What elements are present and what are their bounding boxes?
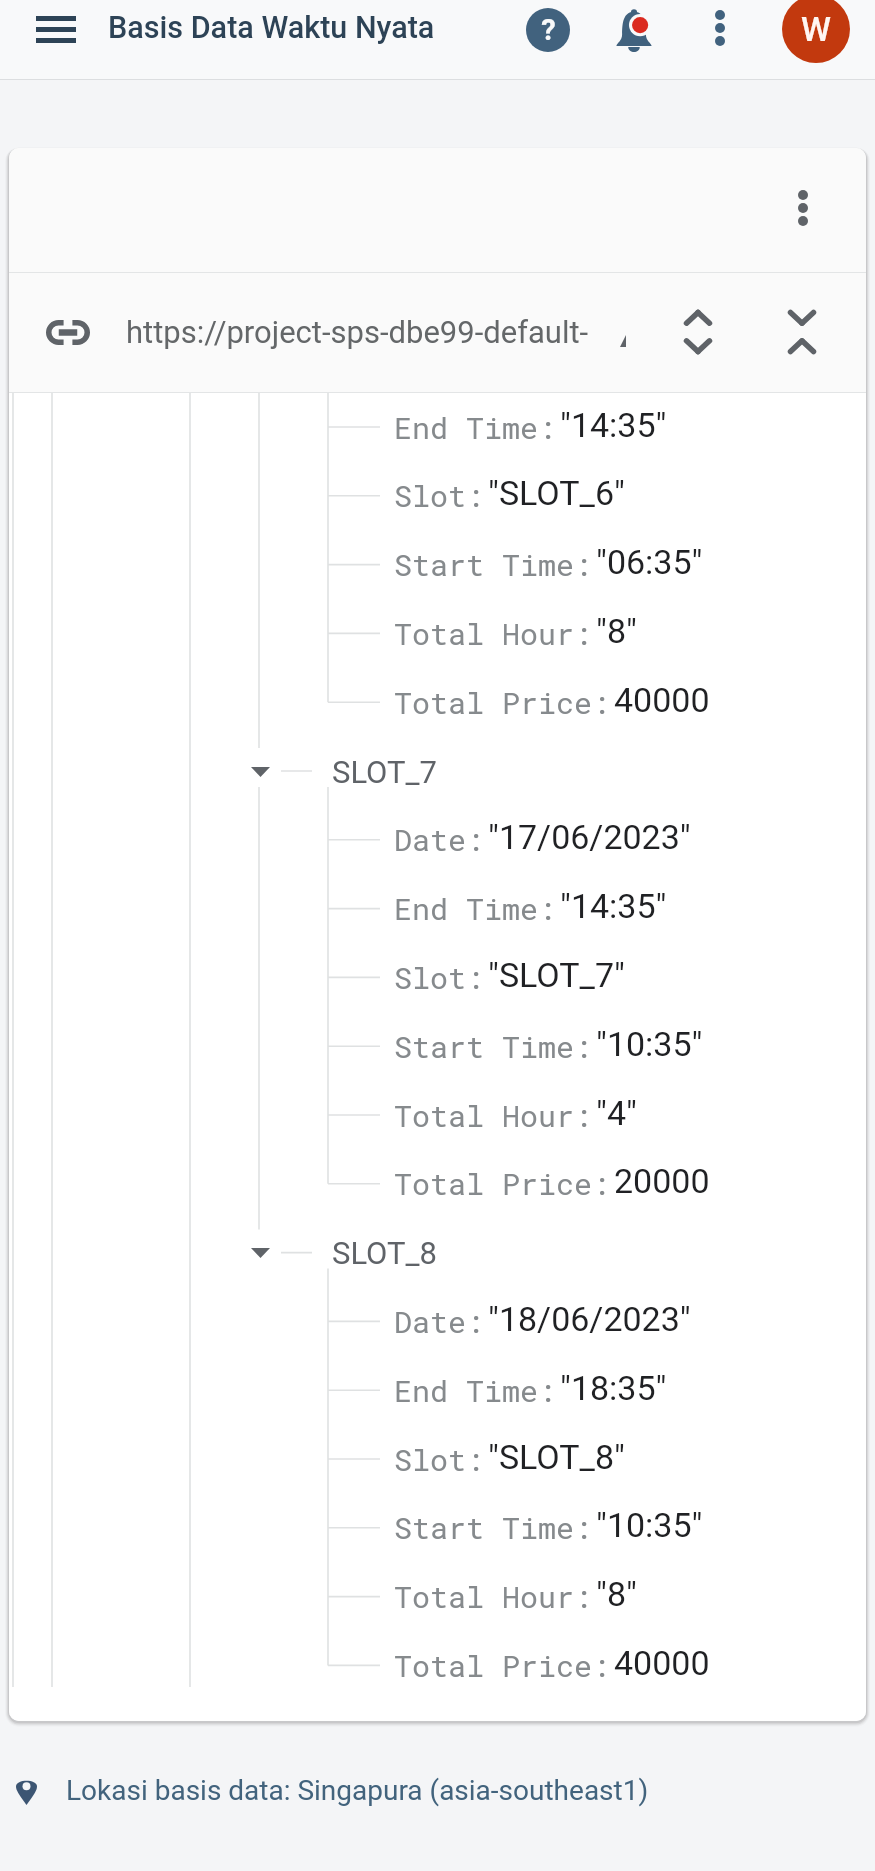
staticText: Slot:: [394, 1440, 485, 1480]
button[interactable]: Open navigation menu: [26, 0, 86, 59]
staticText: "17/06/2023": [488, 817, 691, 857]
staticText: End Time:: [394, 889, 557, 929]
staticText: "8": [596, 611, 637, 651]
button[interactable]: Account: [782, 0, 850, 63]
button[interactable]: SLOT_8: [9, 1218, 866, 1287]
staticText: Total Price:: [394, 1164, 611, 1204]
staticText: 20000: [614, 1161, 710, 1201]
staticText: Slot:: [394, 958, 485, 998]
button[interactable]: Collapse all: [772, 302, 832, 362]
staticText: Total Price:: [394, 683, 611, 723]
button[interactable]: Total Hour:: [9, 599, 866, 668]
button[interactable]: Date:: [9, 1287, 866, 1356]
button[interactable]: Total Price:: [9, 1631, 866, 1700]
button[interactable]: SLOT_7: [9, 737, 866, 806]
staticText: End Time:: [394, 408, 557, 448]
staticText: "14:35": [560, 405, 667, 445]
button[interactable]: Notifications: [604, 1, 664, 61]
button[interactable]: Lokasi basis data: Singapura (asia-south…: [0, 1758, 875, 1822]
staticText: "SLOT_8": [488, 1437, 625, 1477]
staticText: End Time:: [394, 1371, 557, 1411]
staticText: Start Time:: [394, 545, 593, 585]
staticText: "8": [596, 1574, 637, 1614]
staticText: "SLOT_6": [488, 473, 625, 513]
staticText: Total Hour:: [394, 614, 593, 654]
button[interactable]: Copy database URL: [40, 304, 96, 360]
staticText: Total Hour:: [394, 1577, 593, 1617]
button[interactable]: End Time:: [9, 874, 866, 943]
button[interactable]: Total Hour:: [9, 1562, 866, 1631]
staticText: "18:35": [560, 1368, 667, 1408]
button[interactable]: Total Price:: [9, 1149, 866, 1218]
staticText: Basis Data Waktu Nyata: [108, 10, 435, 46]
staticText: "SLOT_7": [488, 955, 625, 995]
button[interactable]: Date:: [9, 805, 866, 874]
staticText: SLOT_8: [332, 1235, 437, 1271]
staticText: "18/06/2023": [488, 1299, 691, 1339]
button[interactable]: Expand all: [668, 302, 728, 362]
button[interactable]: Start Time:: [9, 1012, 866, 1081]
staticText: Date:: [394, 1302, 485, 1342]
staticText: "06:35": [596, 542, 703, 582]
staticText: Lokasi basis data: Singapura (asia-south…: [66, 1774, 649, 1807]
button[interactable]: Start Time:: [9, 530, 866, 599]
button[interactable]: Total Hour:: [9, 1081, 866, 1150]
staticText: SLOT_7: [332, 754, 437, 790]
button[interactable]: Slot:: [9, 461, 866, 530]
button[interactable]: End Time:: [9, 1356, 866, 1425]
staticText: Slot:: [394, 476, 485, 516]
button[interactable]: Help: [518, 0, 578, 60]
staticText: "14:35": [560, 886, 667, 926]
staticText: Total Hour:: [394, 1096, 593, 1136]
button[interactable]: Database options: [769, 174, 837, 242]
staticText: 40000: [614, 680, 710, 720]
staticText: https://project-sps-dbe99-default-: [126, 314, 589, 350]
staticText: "10:35": [596, 1024, 703, 1064]
button[interactable]: Slot:: [9, 943, 866, 1012]
staticText: Start Time:: [394, 1508, 593, 1548]
button[interactable]: End Time:: [9, 393, 866, 462]
button[interactable]: Total Price:: [9, 668, 866, 737]
staticText: W: [801, 9, 831, 49]
staticText: "10:35": [596, 1505, 703, 1545]
staticText: Start Time:: [394, 1027, 593, 1067]
staticText: Date:: [394, 820, 485, 860]
button[interactable]: More options: [692, 0, 748, 56]
staticText: ?: [541, 13, 556, 47]
button[interactable]: Start Time:: [9, 1493, 866, 1562]
staticText: "4": [596, 1093, 637, 1133]
staticText: Total Price:: [394, 1646, 611, 1686]
staticText: 40000: [614, 1643, 710, 1683]
button[interactable]: Slot:: [9, 1425, 866, 1494]
